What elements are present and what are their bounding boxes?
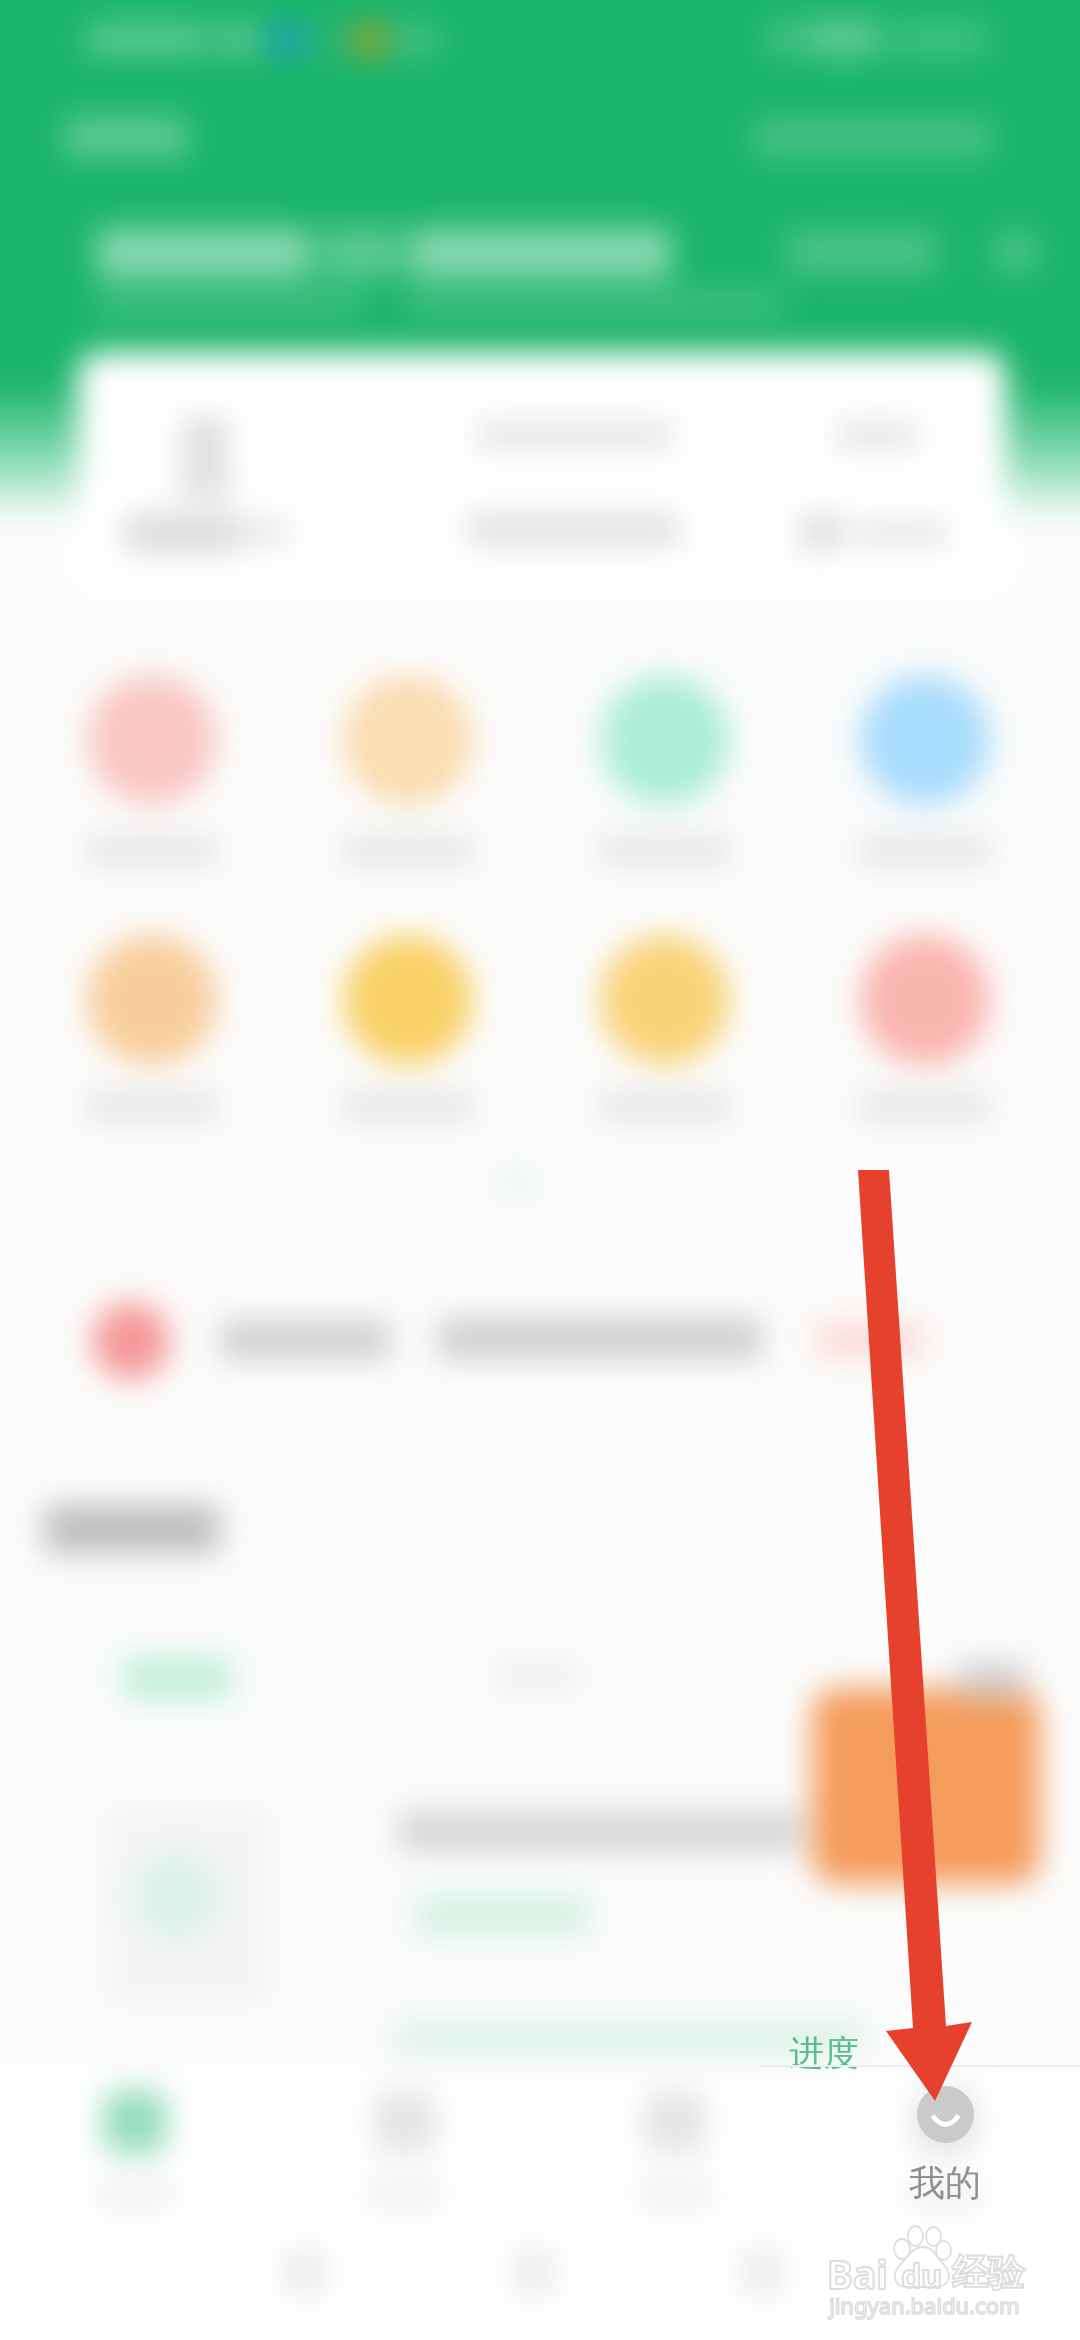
staticText: 我的	[909, 2160, 981, 2205]
button[interactable]: 我的	[880, 2074, 1010, 2224]
staticText: du	[901, 2254, 943, 2298]
staticText: 经验	[952, 2250, 1024, 2295]
staticText: Bai	[827, 2247, 888, 2300]
staticText: 进度	[789, 2031, 859, 2075]
staticText: jingyan.baidu.com	[829, 2290, 1020, 2320]
